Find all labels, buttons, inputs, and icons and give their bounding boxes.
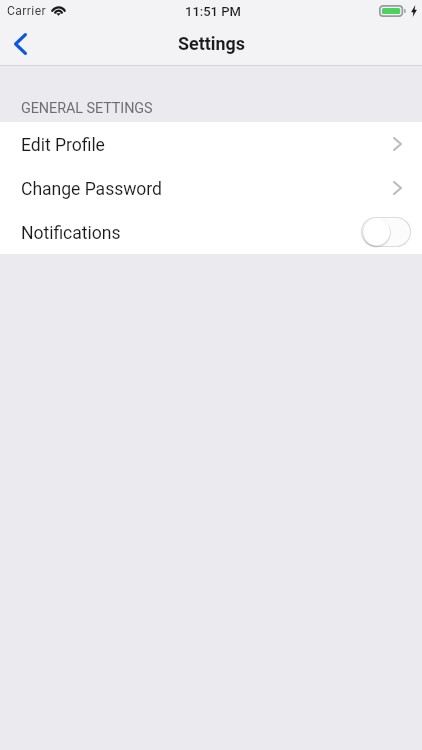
button[interactable]: Edit Profile [0, 122, 422, 166]
staticText: Carrier [7, 4, 47, 18]
staticText: Settings [178, 33, 245, 54]
button[interactable]: Notifications [0, 210, 422, 254]
button[interactable]: Change Password [0, 166, 422, 210]
button[interactable]: Back [0, 22, 44, 65]
staticText: 11:51 PM [185, 4, 241, 19]
staticText: GENERAL SETTINGS [21, 100, 153, 117]
staticText: Notifications [21, 223, 121, 244]
button[interactable]: Notifications toggle [361, 217, 411, 247]
staticText: Edit Profile [21, 135, 105, 156]
staticText: Change Password [21, 179, 162, 200]
